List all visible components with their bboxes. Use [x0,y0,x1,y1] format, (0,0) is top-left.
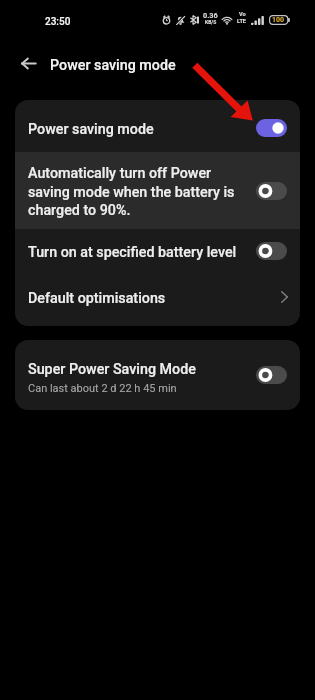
button[interactable] [15,229,300,274]
staticText: Power saving mode [50,57,176,74]
button[interactable]: Back [13,48,44,79]
button[interactable] [15,340,300,410]
button[interactable]: Switch on [256,119,287,137]
staticText: saving mode when the battery is [28,184,235,201]
staticText: Super Power Saving Mode [28,361,196,378]
staticText: KB/S [205,20,217,25]
staticText: Can last about 2 d 22 h 45 min [28,382,177,395]
staticText: 23:50 [45,16,71,28]
staticText: charged to 90%. [28,202,131,219]
button[interactable]: Switch off [256,182,287,200]
staticText: Default optimisations [28,290,166,307]
staticText: Power saving mode [28,121,154,138]
staticText: LTE [237,18,247,25]
staticText: Automatically turn off Power [28,165,212,182]
button[interactable]: Switch off [256,366,287,384]
button[interactable] [15,274,300,326]
staticText: Turn on at specified battery level [28,244,237,261]
staticText: 0.36 [203,11,218,20]
staticText: Vo [239,11,246,18]
staticText: 100 [272,16,285,24]
button[interactable]: Switch off [256,242,287,260]
button[interactable] [15,152,300,229]
button[interactable] [15,100,300,152]
button[interactable]: Open default optimisations [272,286,295,308]
